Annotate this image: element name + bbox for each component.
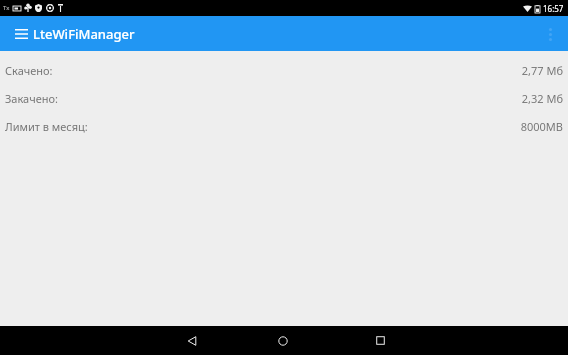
button[interactable]: Скачено: (0, 56, 568, 84)
staticText: Лимит в месяц: (5, 119, 88, 134)
staticText: 2,32 Мб (521, 91, 563, 106)
button[interactable]: Лимит в месяц: (0, 112, 568, 140)
staticText: 16:57 (543, 3, 564, 14)
button[interactable]: Home (269, 327, 296, 354)
staticText: 8000MB (520, 119, 563, 134)
staticText: Закачено: (5, 91, 58, 106)
button[interactable]: Закачено: (0, 84, 568, 112)
staticText: Tx (3, 4, 10, 12)
staticText: 2,77 Мб (521, 63, 563, 78)
staticText: Скачено: (5, 63, 53, 78)
button[interactable]: More options (537, 21, 563, 47)
button[interactable]: Recent apps (367, 327, 394, 354)
button[interactable]: Back (178, 327, 205, 354)
staticText: LteWiFiManager (33, 25, 135, 43)
button[interactable]: Open navigation drawer (8, 21, 34, 47)
